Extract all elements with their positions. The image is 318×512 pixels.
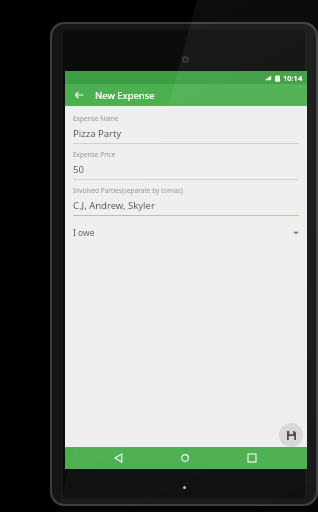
button[interactable]: Home bbox=[173, 447, 197, 469]
button[interactable]: Recents bbox=[240, 447, 264, 469]
button[interactable]: Save bbox=[279, 423, 303, 447]
staticText: C.J, Andrew, Skyler bbox=[73, 199, 155, 212]
staticText: Involved Parties(separate by comas) bbox=[73, 186, 183, 195]
button[interactable]: Back bbox=[107, 447, 131, 469]
staticText: New Expense bbox=[95, 89, 155, 102]
button[interactable]: Involved Parties(separate by comas) bbox=[73, 186, 299, 216]
staticText: Pizza Party bbox=[73, 127, 122, 140]
button[interactable]: I owe bbox=[73, 225, 299, 241]
staticText: 50 bbox=[73, 163, 84, 176]
staticText: Expense Name bbox=[73, 114, 119, 123]
staticText: I owe bbox=[73, 227, 95, 239]
button[interactable]: Expense Price bbox=[73, 150, 299, 180]
staticText: 10:14 bbox=[283, 73, 303, 83]
staticText: Expense Price bbox=[73, 150, 116, 159]
button[interactable]: Expense Name bbox=[73, 114, 299, 144]
button[interactable]: Back bbox=[71, 87, 87, 103]
